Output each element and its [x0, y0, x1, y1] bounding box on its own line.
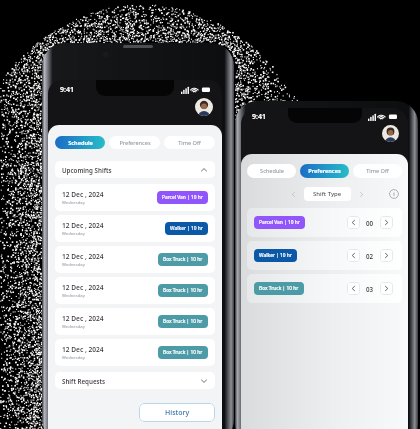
staticText: Schedule	[260, 167, 284, 175]
other: Next	[358, 191, 365, 198]
staticText: Wednesday	[62, 293, 85, 299]
staticText: 12 Dec , 2024	[62, 283, 104, 292]
button[interactable]: 12 Dec , 2024	[55, 308, 215, 335]
staticText: 00	[366, 219, 374, 227]
staticText: Schedule	[68, 139, 93, 147]
button[interactable]: Shift Requests	[55, 372, 215, 389]
button[interactable]: Preferences	[300, 164, 349, 178]
staticText: Wednesday	[62, 355, 85, 361]
staticText: Shift Type	[313, 190, 342, 198]
staticText: Walker | 10 hr	[170, 225, 203, 232]
staticText: Box Truck | 10 hr	[163, 287, 203, 294]
staticText: Box Truck | 10 hr	[163, 318, 203, 325]
button[interactable]: Box Truck | 10 hr	[247, 274, 402, 303]
staticText: Wednesday	[62, 231, 85, 237]
staticText: History	[165, 408, 190, 418]
staticText: 9:41	[60, 85, 74, 95]
button[interactable]: Schedule	[55, 136, 105, 149]
button[interactable]: Increase	[380, 216, 393, 229]
button[interactable]: Upcoming Shifts	[55, 161, 215, 178]
staticText: Parcel Van | 10 hr	[259, 219, 300, 226]
staticText: Wednesday	[62, 262, 85, 268]
staticText: Shift Requests	[62, 377, 106, 385]
button[interactable]: Increase	[380, 249, 393, 262]
staticText: Wednesday	[62, 200, 85, 206]
button[interactable]: Decrease	[347, 216, 360, 229]
button[interactable]: 12 Dec , 2024	[55, 339, 215, 366]
button[interactable]: Decrease	[347, 282, 360, 295]
staticText: Time Off	[366, 167, 389, 175]
staticText: Upcoming Shifts	[62, 166, 112, 174]
staticText: 12 Dec , 2024	[62, 345, 104, 354]
button[interactable]: 12 Dec , 2024	[55, 246, 215, 273]
staticText: Preferences	[308, 167, 341, 175]
button[interactable]: Parcel Van | 10 hr	[247, 208, 402, 237]
staticText: 12 Dec , 2024	[62, 314, 104, 323]
button[interactable]: 12 Dec , 2024	[55, 277, 215, 304]
staticText: 9:41	[252, 112, 266, 122]
button[interactable]: Decrease	[347, 249, 360, 262]
button[interactable]: Time Off	[164, 136, 215, 149]
staticText: Parcel Van | 10 hr	[162, 194, 203, 201]
staticText: Box Truck | 10 hr	[163, 256, 203, 263]
button[interactable]: 12 Dec , 2024	[55, 215, 215, 242]
staticText: 12 Dec , 2024	[62, 252, 104, 261]
button[interactable]: Increase	[380, 282, 393, 295]
staticText: 12 Dec , 2024	[62, 221, 104, 230]
button[interactable]: History	[139, 403, 215, 422]
button[interactable]: Profile	[382, 125, 399, 142]
staticText: 03	[366, 285, 374, 293]
button[interactable]: Shift Type	[304, 187, 351, 201]
staticText: Wednesday	[62, 324, 85, 330]
button[interactable]: Profile	[195, 98, 213, 116]
staticText: 02	[366, 252, 374, 260]
button[interactable]: Time Off	[353, 164, 402, 178]
staticText: Preferences	[119, 139, 151, 147]
staticText: Box Truck | 10 hr	[259, 285, 299, 292]
staticText: Box Truck | 10 hr	[163, 349, 203, 356]
staticText: Walker | 10 hr	[259, 252, 292, 259]
button[interactable]: Schedule	[247, 164, 296, 178]
button[interactable]: Walker | 10 hr	[247, 241, 402, 270]
button[interactable]: Info	[389, 189, 399, 199]
button[interactable]: Preferences	[109, 136, 160, 149]
other: Previous	[290, 191, 297, 198]
staticText: Time Off	[178, 139, 201, 147]
staticText: 12 Dec , 2024	[62, 190, 104, 199]
button[interactable]: 12 Dec , 2024	[55, 184, 215, 211]
